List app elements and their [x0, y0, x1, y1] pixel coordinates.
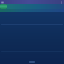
- button[interactable]: Menu: [0, 0, 64, 4]
- button[interactable]: Menu: [1, 1, 4, 4]
- button[interactable]: More options: [60, 1, 63, 4]
- button[interactable]: [0, 4, 7, 9]
- button[interactable]: [0, 9, 64, 12]
- button[interactable]: Action: [29, 61, 35, 63]
- button[interactable]: [7, 4, 64, 9]
